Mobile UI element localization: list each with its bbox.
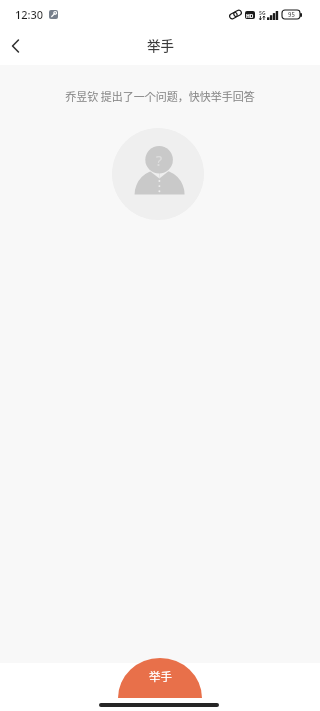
staticText: 举手 — [147, 35, 174, 55]
staticText: 12:30 — [15, 7, 44, 22]
staticText: 乔昱钦 提出了一个问题，快快举手回答 — [0, 88, 320, 104]
staticText: 95 — [288, 10, 295, 19]
staticText: 5G — [259, 9, 266, 16]
staticText: HD — [246, 12, 254, 19]
staticText: 举手 — [149, 668, 172, 685]
button[interactable]: 举手 — [118, 658, 202, 698]
button[interactable]: Back — [0, 28, 30, 64]
staticText: ? — [156, 151, 163, 170]
